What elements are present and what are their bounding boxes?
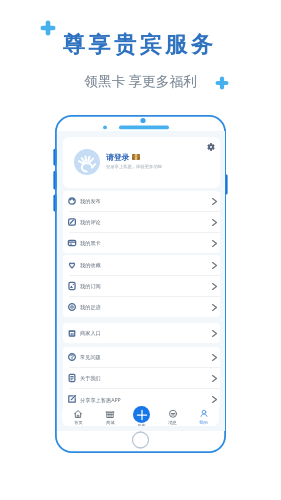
staticText: 我的评论 bbox=[80, 219, 212, 226]
button[interactable]: 常见问题 bbox=[63, 347, 220, 367]
staticText: 我的收藏 bbox=[80, 262, 212, 269]
staticText: 商家入口 bbox=[80, 330, 212, 337]
staticText: 尊享贵宾服务 bbox=[0, 31, 280, 59]
staticText: 我的 bbox=[199, 420, 208, 425]
button[interactable]: 商家入口 bbox=[63, 323, 220, 343]
staticText: 登录享上客惠，体验更多功能 bbox=[106, 164, 162, 169]
button[interactable]: 我的黑卡 bbox=[63, 233, 220, 253]
staticText: 发布 bbox=[137, 423, 146, 426]
button[interactable]: 我的评论 bbox=[63, 212, 220, 232]
button[interactable]: 关于我们 bbox=[63, 368, 220, 388]
button[interactable]: 请登录 bbox=[63, 137, 220, 188]
button[interactable]: 我的收藏 bbox=[63, 255, 220, 275]
button[interactable]: Settings bbox=[207, 143, 215, 151]
staticText: 消息 bbox=[168, 420, 177, 425]
button[interactable]: 我的订阅 bbox=[63, 276, 220, 296]
staticText: 我的订阅 bbox=[80, 283, 212, 290]
button[interactable]: 首页 bbox=[62, 406, 94, 426]
other: 发布 bbox=[133, 406, 150, 423]
staticText: 首页 bbox=[74, 420, 83, 425]
staticText: 常见问题 bbox=[80, 354, 212, 361]
staticText: 我的发布 bbox=[80, 198, 212, 205]
button[interactable]: 我的发布 bbox=[63, 191, 220, 211]
staticText: 领黑卡 享更多福利 bbox=[0, 71, 281, 90]
button[interactable]: 我的足迹 bbox=[63, 297, 220, 317]
button[interactable]: 商城 bbox=[94, 406, 126, 426]
button[interactable]: 发布 bbox=[126, 406, 157, 426]
staticText: 我的黑卡 bbox=[80, 240, 212, 247]
staticText: 我的足迹 bbox=[80, 304, 212, 311]
staticText: 关于我们 bbox=[80, 375, 212, 382]
button[interactable]: 我的 bbox=[188, 406, 219, 426]
staticText: 请登录 bbox=[106, 152, 130, 162]
staticText: 分享享上客惠APP bbox=[80, 396, 212, 403]
button[interactable]: 分享享上客惠APP bbox=[63, 389, 220, 409]
button[interactable]: 消息 bbox=[157, 406, 188, 426]
staticText: 商城 bbox=[106, 420, 115, 425]
